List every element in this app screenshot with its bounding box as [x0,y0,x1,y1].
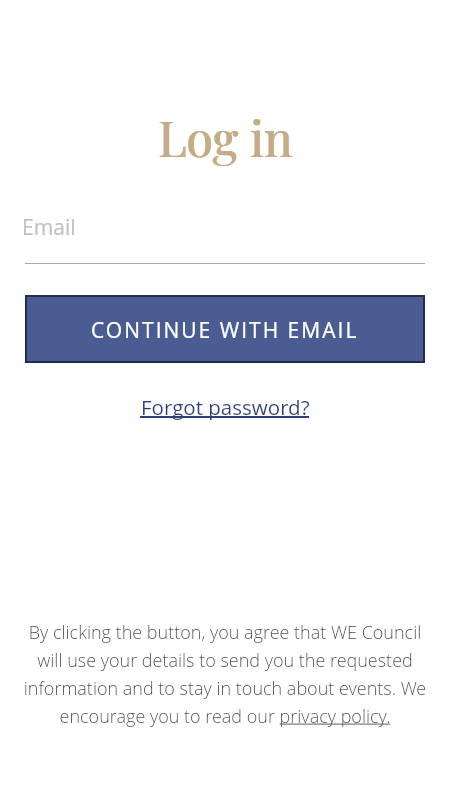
staticText: CONTINUE WITH EMAIL [91,316,359,345]
button[interactable]: Email [22,211,425,264]
staticText: Email [22,213,76,242]
button[interactable] [277,702,391,728]
button[interactable]: Forgot password? [141,393,310,421]
button[interactable]: CONTINUE WITH EMAIL [25,295,425,363]
staticText: Log in [0,105,450,169]
staticText: Log in [1,105,450,169]
staticText: By clicking the button, you agree that W… [0,620,450,728]
